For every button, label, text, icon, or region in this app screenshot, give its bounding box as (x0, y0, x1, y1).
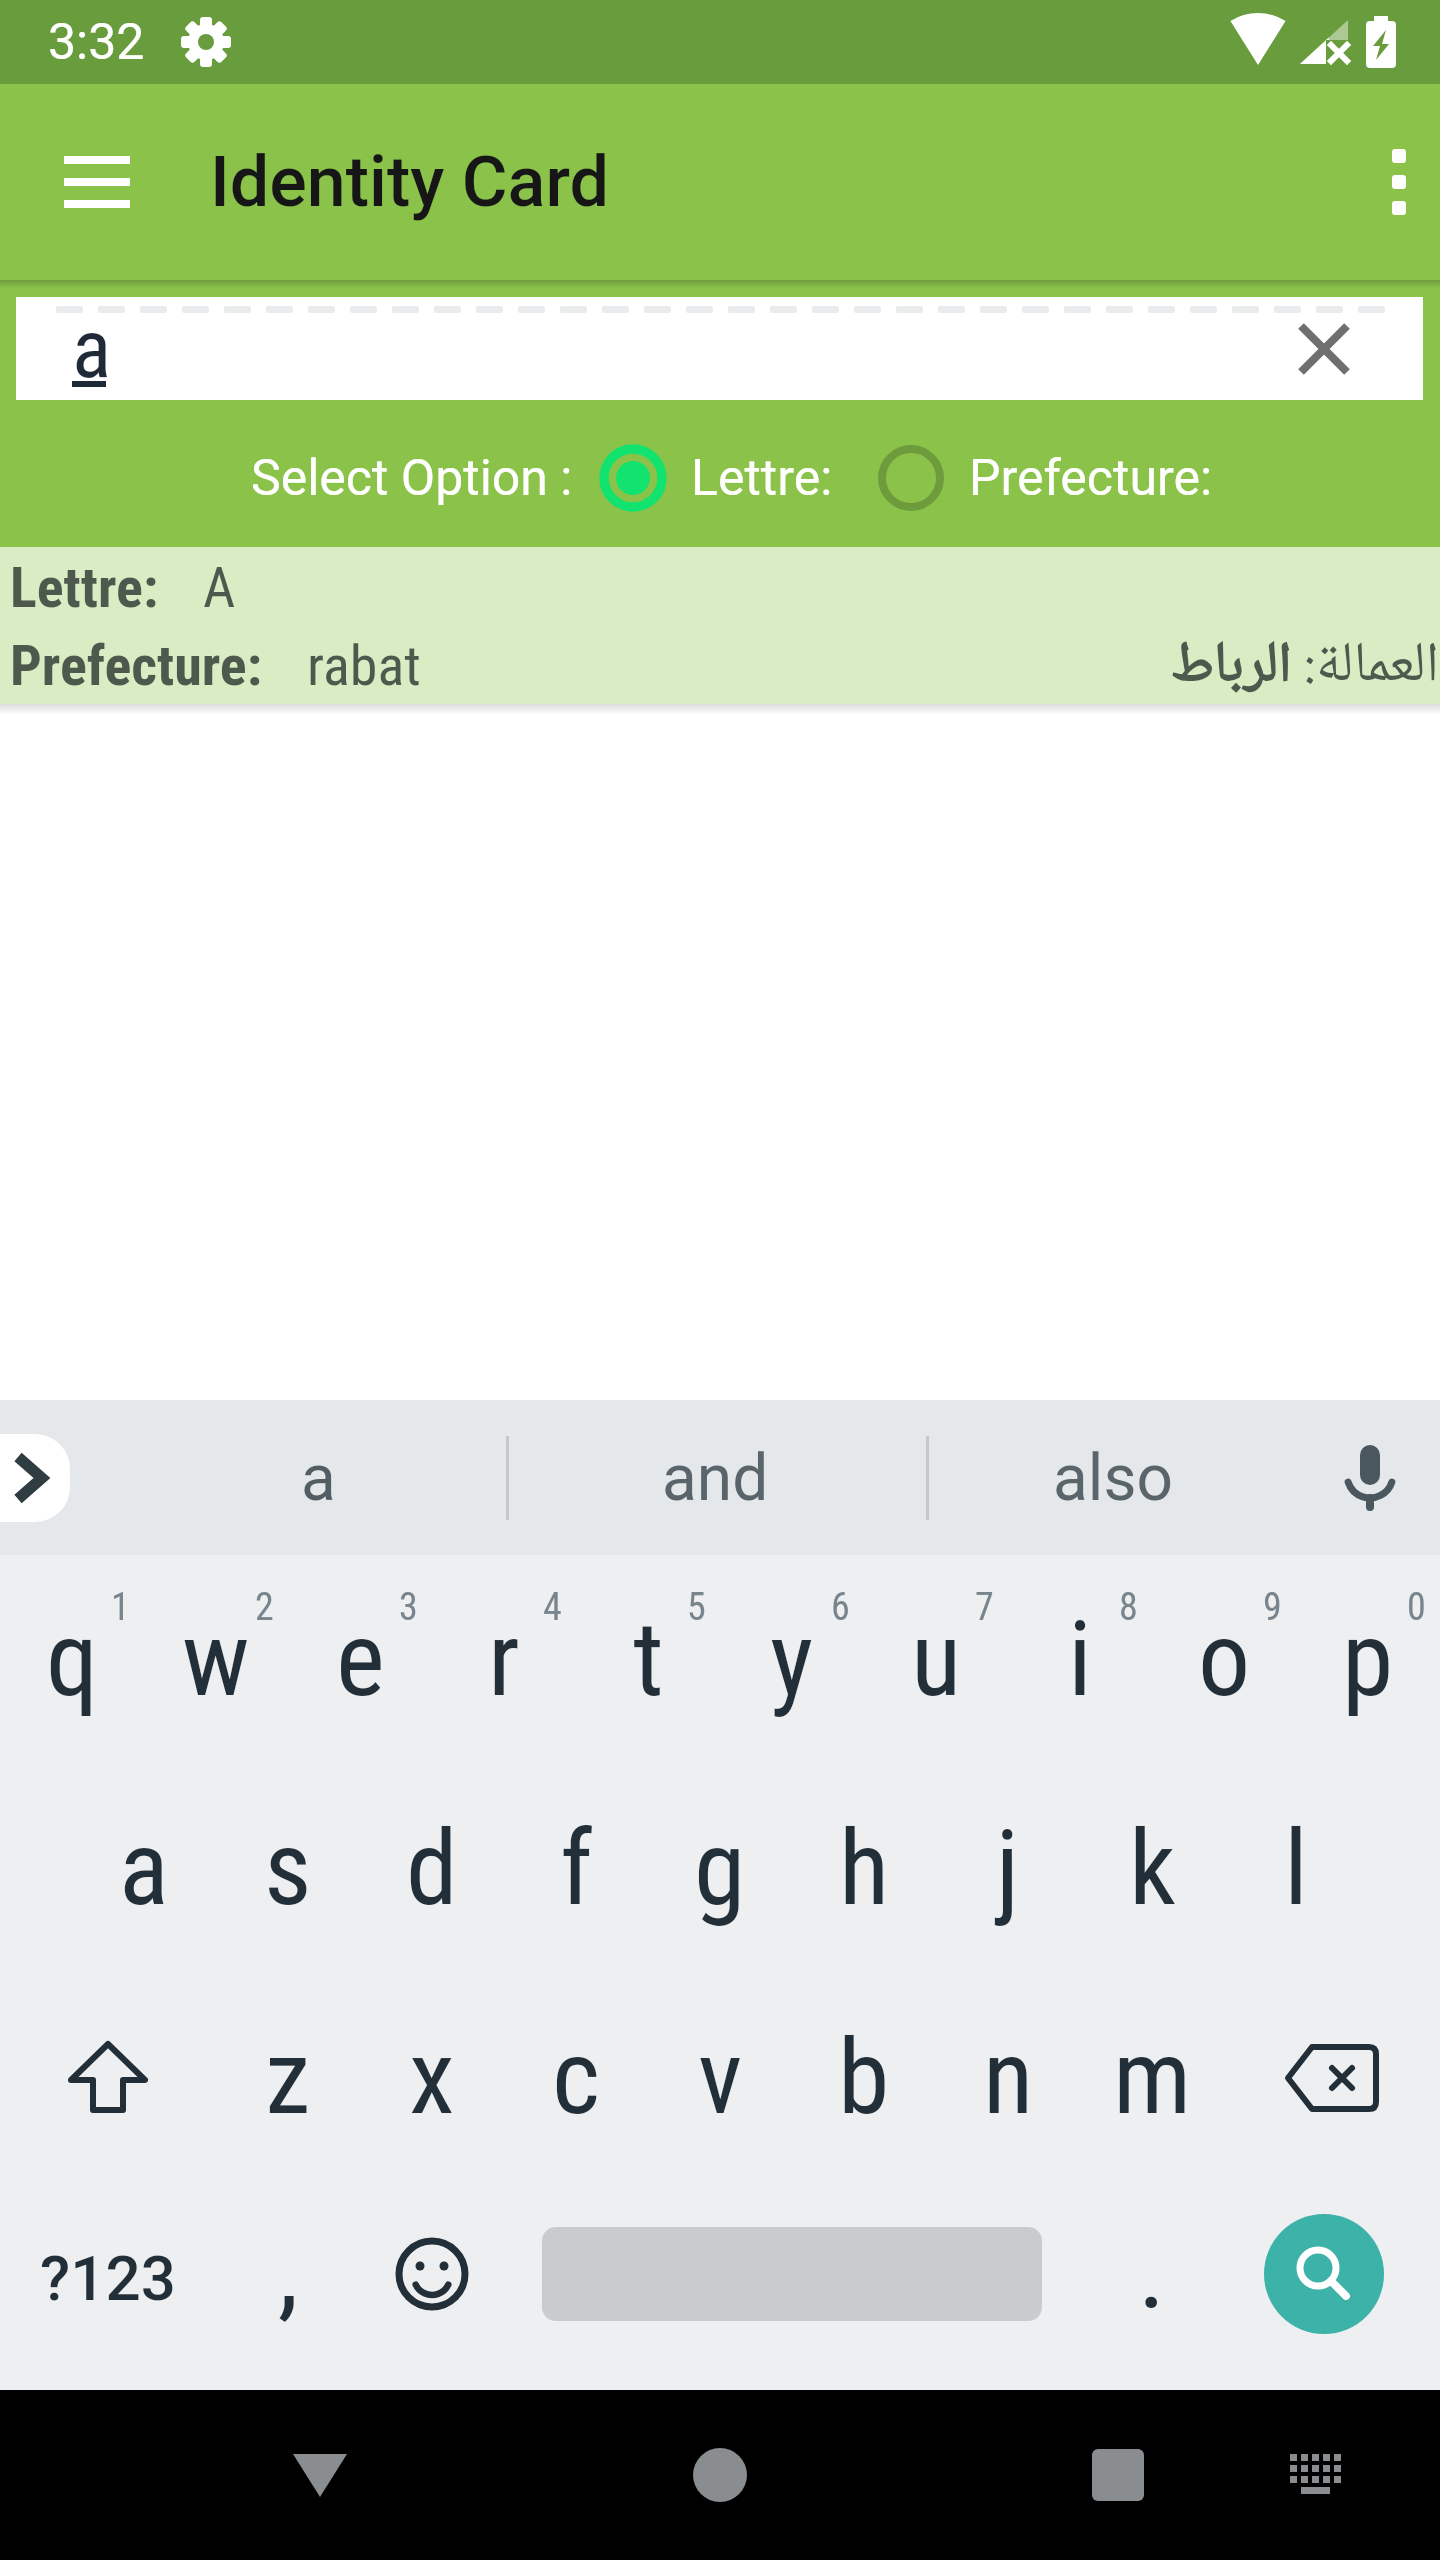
button[interactable]: l (1224, 1764, 1368, 1973)
staticText: Prefecture: (969, 449, 1225, 508)
staticText: 3 (399, 1585, 418, 1630)
button[interactable]: b (792, 1973, 936, 2182)
staticText: b (838, 2017, 890, 2139)
staticText: p (1342, 1599, 1394, 1721)
staticText: A (203, 555, 236, 621)
staticText: 5 (687, 1585, 706, 1630)
button[interactable] (1301, 326, 1347, 372)
button[interactable] (504, 2170, 1080, 2378)
button[interactable]: k (1080, 1764, 1224, 1973)
button[interactable] (1392, 149, 1406, 215)
staticText: q (46, 1599, 99, 1721)
button[interactable]: c (504, 1973, 648, 2182)
staticText: f (560, 1808, 593, 1930)
button[interactable]: s (216, 1764, 360, 1973)
staticText: j (996, 1808, 1020, 1930)
staticText: 0 (1407, 1585, 1426, 1630)
staticText: n (983, 2017, 1034, 2139)
staticText: Identity Card (210, 141, 609, 223)
button[interactable]: i (1008, 1555, 1152, 1764)
staticText: 8 (1119, 1585, 1138, 1630)
button[interactable]: Lettre: (0, 547, 1440, 628)
staticText: k (1129, 1808, 1176, 1930)
button[interactable]: x (360, 1973, 504, 2182)
button[interactable] (0, 1973, 216, 2182)
staticText: 6 (831, 1585, 850, 1630)
staticText: a (301, 1441, 336, 1516)
staticText: 7 (975, 1585, 994, 1630)
button[interactable]: a (72, 1764, 216, 1973)
button[interactable]: y (720, 1555, 864, 1764)
staticText: Select Option : (251, 449, 585, 508)
button[interactable] (693, 2448, 747, 2502)
staticText: t (633, 1599, 664, 1721)
button[interactable]: h (792, 1764, 936, 1973)
button[interactable]: m (1080, 1973, 1224, 2182)
button[interactable]: j (936, 1764, 1080, 1973)
button[interactable] (1346, 1445, 1394, 1511)
staticText: 4 (543, 1585, 562, 1630)
button[interactable] (293, 2454, 347, 2497)
staticText: u (911, 1599, 962, 1721)
staticText: z (265, 2017, 311, 2139)
staticText: and (662, 1441, 769, 1516)
button[interactable]: o (1152, 1555, 1296, 1764)
staticText: a (119, 1808, 169, 1930)
button[interactable] (64, 156, 130, 208)
staticText: 1 (111, 1585, 130, 1630)
staticText: g (694, 1808, 746, 1930)
button[interactable]: q (0, 1555, 144, 1764)
button[interactable]: ?123 (0, 2170, 216, 2378)
button[interactable] (1290, 2454, 1346, 2496)
staticText: d (406, 1808, 458, 1930)
staticText: r (488, 1599, 520, 1721)
staticText: ?123 (40, 2242, 176, 2315)
staticText: h (839, 1808, 890, 1930)
staticText: m (1113, 2017, 1192, 2139)
button[interactable]: Prefecture: (875, 442, 1225, 514)
staticText: w (182, 1599, 250, 1721)
button[interactable]: a (208, 1423, 428, 1533)
button[interactable]: and (605, 1423, 825, 1533)
button[interactable]: f (504, 1764, 648, 1973)
button[interactable]: g (648, 1764, 792, 1973)
button[interactable]: Prefecture: (0, 628, 1440, 704)
staticText: 9 (1263, 1585, 1282, 1630)
button[interactable]: Lettre: (597, 442, 845, 514)
staticText: o (1198, 1599, 1251, 1721)
button[interactable] (0, 1434, 70, 1522)
button[interactable] (1224, 1973, 1440, 2182)
button[interactable]: . (1080, 2170, 1224, 2378)
button[interactable]: e (288, 1555, 432, 1764)
staticText: 3:32 (48, 13, 145, 72)
staticText: i (1068, 1599, 1092, 1721)
button[interactable]: p (1296, 1555, 1440, 1764)
staticText: 2 (255, 1585, 274, 1630)
staticText: . (1138, 2211, 1166, 2333)
staticText: v (698, 2017, 743, 2139)
staticText: العمالة: الرباط (1171, 628, 1440, 704)
button[interactable]: u (864, 1555, 1008, 1764)
button[interactable]: r (432, 1555, 576, 1764)
button[interactable]: , (216, 2170, 360, 2378)
button[interactable]: z (216, 1973, 360, 2182)
staticText: y (770, 1599, 814, 1721)
button[interactable]: t (576, 1555, 720, 1764)
button[interactable]: w (144, 1555, 288, 1764)
staticText: a (72, 301, 112, 397)
button[interactable] (1264, 2214, 1384, 2334)
button[interactable] (360, 2170, 504, 2378)
staticText: rabat (307, 633, 421, 699)
staticText: c (552, 2017, 601, 2139)
button[interactable]: v (648, 1973, 792, 2182)
button[interactable]: n (936, 1973, 1080, 2182)
staticText: Prefecture: (10, 633, 263, 699)
staticText: x (409, 2017, 455, 2139)
button[interactable] (1092, 2449, 1144, 2501)
staticText: s (264, 1808, 312, 1930)
staticText: Lettre: (10, 555, 159, 621)
staticText: also (1053, 1441, 1173, 1516)
staticText: e (336, 1599, 385, 1721)
button[interactable]: d (360, 1764, 504, 1973)
button[interactable]: also (1003, 1423, 1223, 1533)
